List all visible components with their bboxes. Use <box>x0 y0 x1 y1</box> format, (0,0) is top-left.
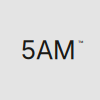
staticText: 5AM ™ <box>21 35 83 65</box>
